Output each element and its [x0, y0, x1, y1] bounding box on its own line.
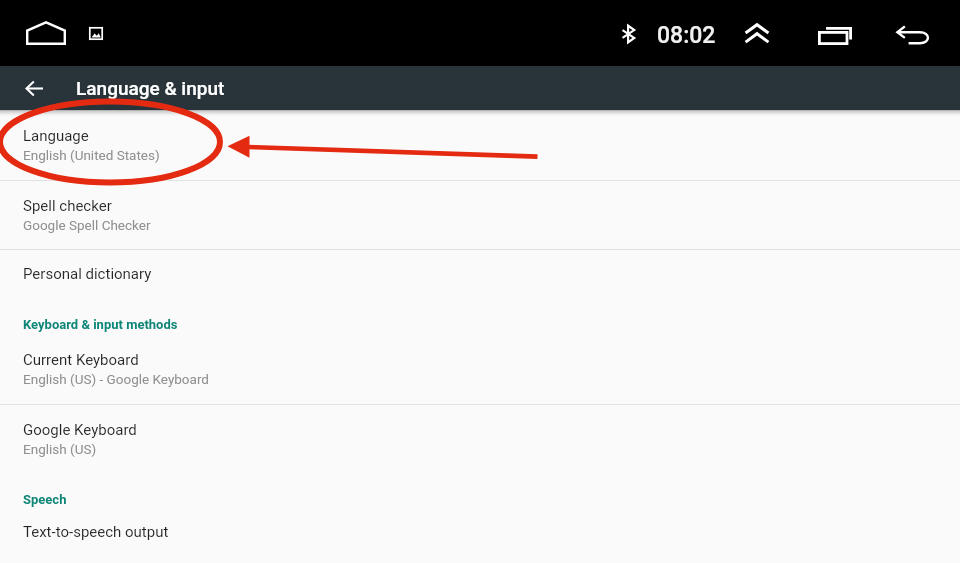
staticText: Spell checker	[23, 197, 112, 215]
staticText: Current Keyboard	[23, 351, 139, 369]
staticText: English (US) - Google Keyboard	[23, 371, 209, 387]
staticText: Google Keyboard	[23, 421, 137, 439]
button[interactable]: Navigate up	[12, 66, 57, 110]
staticText: Google Spell Checker	[23, 217, 151, 233]
button[interactable]: Current Keyboard	[0, 350, 960, 404]
button[interactable]: Spell checker	[0, 181, 960, 249]
button[interactable]: Personal dictionary	[0, 250, 960, 298]
staticText: Speech	[23, 492, 67, 507]
button[interactable]: Recent apps	[810, 14, 858, 54]
other: Bluetooth	[622, 25, 635, 43]
button[interactable]: Home	[22, 13, 70, 53]
staticText: Personal dictionary	[23, 265, 152, 283]
button[interactable]: Back	[890, 14, 936, 54]
button[interactable]: Google Keyboard	[0, 405, 960, 473]
staticText: English (US)	[23, 441, 97, 457]
staticText: Text-to-speech output	[23, 523, 169, 541]
staticText: Keyboard & input methods	[23, 317, 178, 332]
button[interactable]: Language	[0, 110, 960, 180]
staticText: Language	[23, 127, 89, 145]
staticText: Language & input	[76, 77, 225, 99]
staticText: 08:02	[657, 22, 716, 49]
button[interactable]: Screenshot	[79, 17, 113, 49]
button[interactable]: Expand quick settings	[734, 13, 780, 53]
staticText: English (United States)	[23, 147, 160, 163]
button[interactable]: Text-to-speech output	[0, 525, 960, 563]
